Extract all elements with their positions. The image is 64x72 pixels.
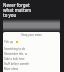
button[interactable]: Stuff before someth	[3, 61, 60, 66]
button[interactable]: Remember this	[3, 51, 60, 56]
staticText: Remember this	[4, 52, 24, 56]
staticText: Stuff before someth	[4, 62, 30, 66]
staticText: Something to do	[4, 47, 26, 51]
button[interactable]: Take a look here	[3, 56, 60, 61]
staticText: Pick up	[4, 40, 14, 44]
staticText: More ideas	[4, 67, 18, 71]
staticText: Keep your notes	[3, 33, 60, 37]
button[interactable]: More ideas	[3, 66, 60, 71]
staticText: Never forget what matters to you	[3, 2, 32, 18]
button[interactable]: Pick up	[3, 40, 60, 44]
staticText: Take a look here	[4, 57, 25, 61]
button[interactable]: Something to do	[3, 46, 60, 51]
